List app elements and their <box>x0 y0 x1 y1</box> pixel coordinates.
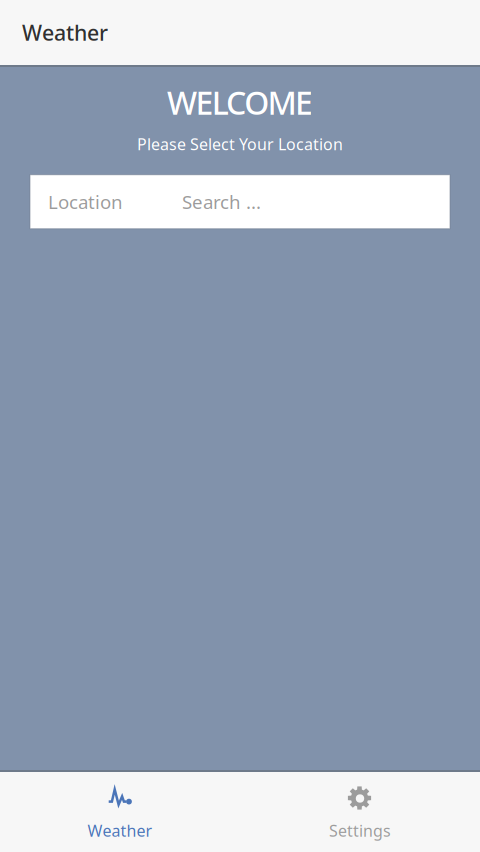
staticText: Search ... <box>182 189 261 214</box>
staticText: Settings <box>329 820 391 841</box>
button[interactable]: Weather <box>0 772 240 852</box>
button[interactable]: Settings <box>240 772 480 852</box>
staticText: Weather <box>87 820 152 841</box>
staticText: Location <box>48 189 123 214</box>
staticText: Weather <box>22 18 108 47</box>
staticText: Please Select Your Location <box>137 133 343 155</box>
button[interactable]: Location <box>30 175 450 229</box>
staticText: WELCOME <box>167 81 313 123</box>
